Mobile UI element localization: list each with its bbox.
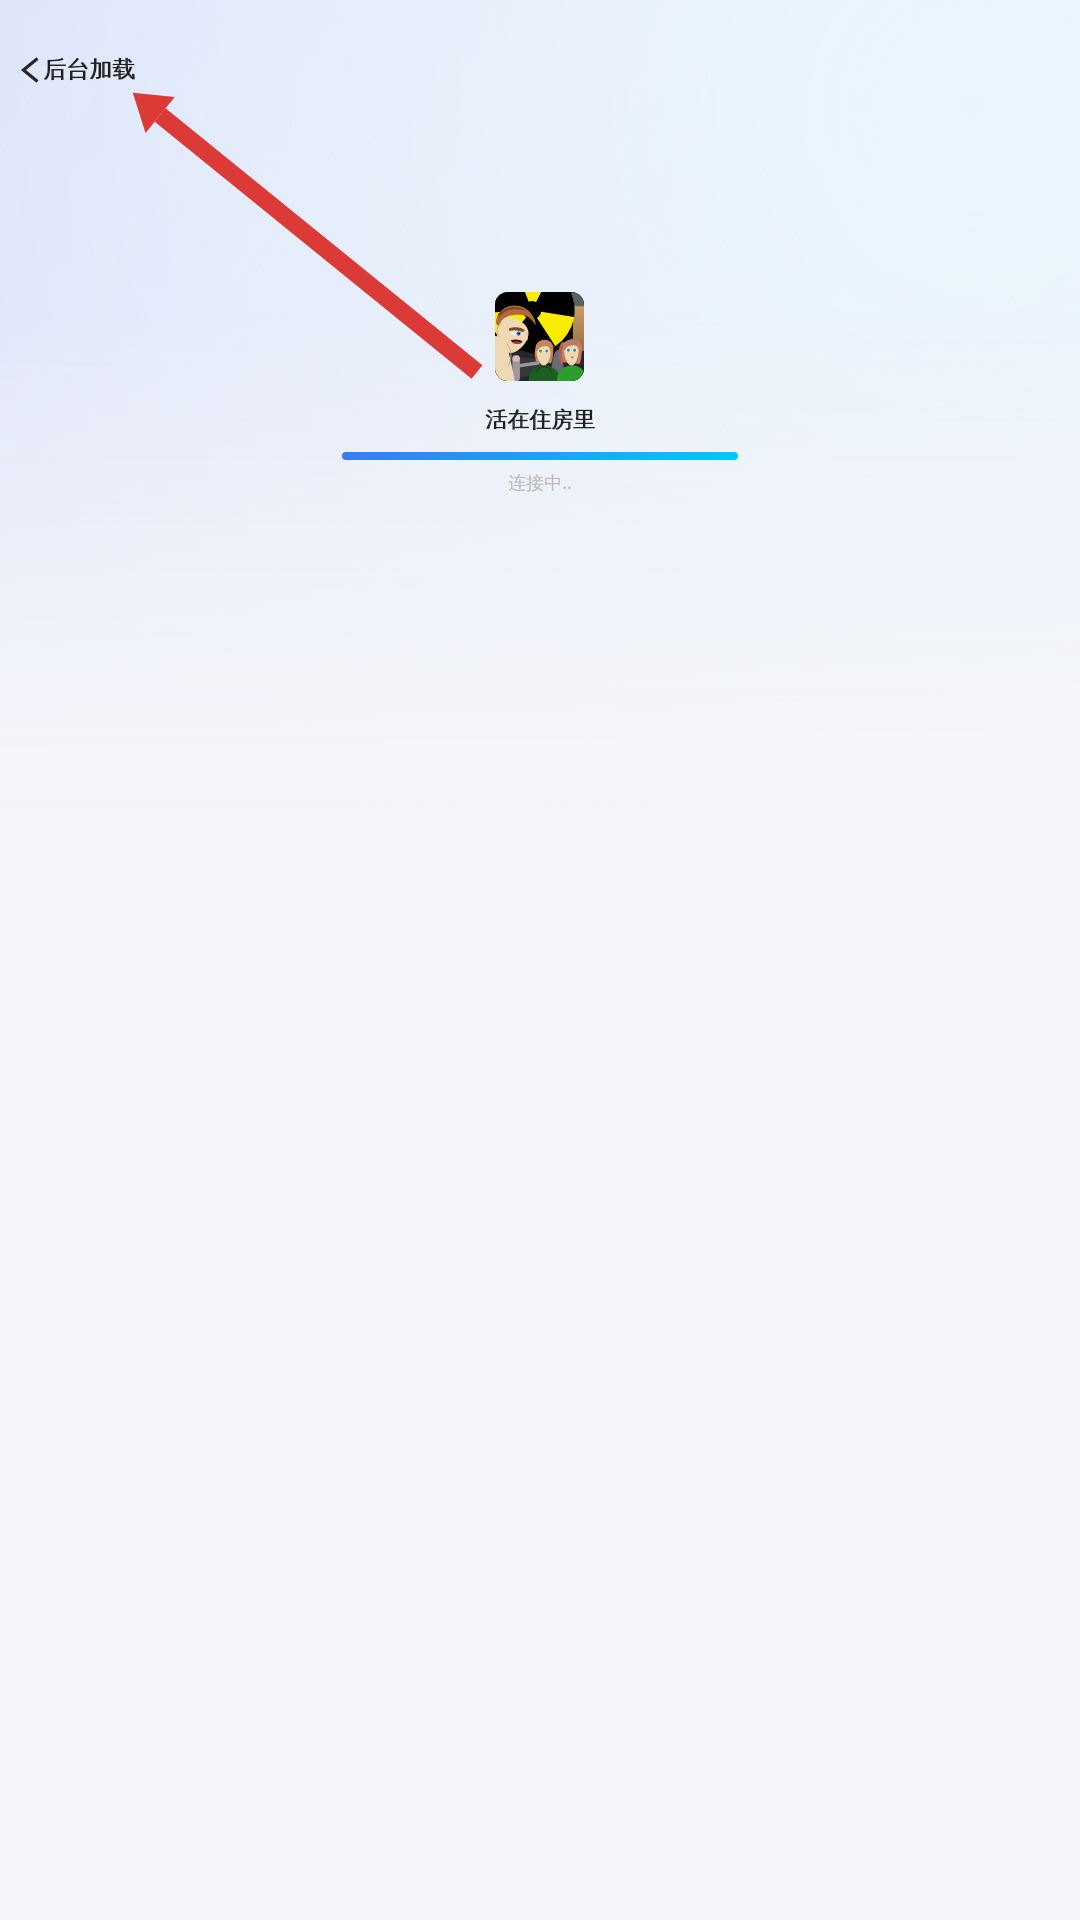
staticText: 后台加载	[44, 55, 136, 84]
staticText: 活在住房里	[485, 406, 595, 434]
staticText: 活在住房里	[486, 406, 596, 434]
button[interactable]: Back	[12, 47, 147, 92]
button[interactable]: 活在住房里 app icon	[495, 292, 584, 381]
staticText: 后台加载	[43, 55, 135, 84]
staticText: 连接中..	[508, 470, 572, 495]
